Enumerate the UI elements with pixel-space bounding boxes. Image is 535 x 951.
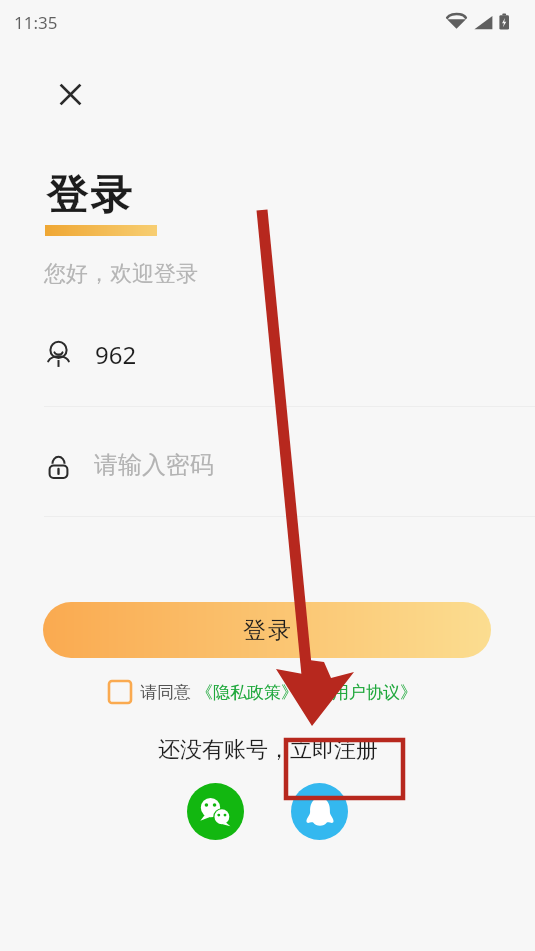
button[interactable]: 登录 <box>43 602 491 658</box>
staticText: 11:35 <box>14 11 58 34</box>
staticText: 请输入密码 <box>94 450 214 480</box>
button[interactable]: Close <box>46 70 94 118</box>
button[interactable]: 《用户协议》 <box>315 682 417 703</box>
staticText: 登录 <box>242 616 292 645</box>
staticText: 962 <box>95 338 137 371</box>
staticText: 还没有账号， <box>158 736 290 764</box>
staticText: 《用户协议》 <box>315 682 417 703</box>
staticText: 《隐私政策》 <box>196 682 298 703</box>
button[interactable]: Login with QQ <box>291 783 348 840</box>
staticText: 立即注册 <box>290 736 378 764</box>
staticText: 您好，欢迎登录 <box>44 260 198 288</box>
button[interactable]: Login with WeChat <box>187 783 244 840</box>
button[interactable]: 962 <box>45 328 535 380</box>
staticText: 登录 <box>45 170 133 222</box>
button[interactable]: 请输入密码 <box>45 439 535 491</box>
button[interactable]: 《隐私政策》 <box>196 682 298 703</box>
button[interactable]: 立即注册 <box>290 736 378 764</box>
staticText: 请同意 <box>140 682 191 703</box>
button[interactable]: Agree to terms <box>104 676 136 708</box>
